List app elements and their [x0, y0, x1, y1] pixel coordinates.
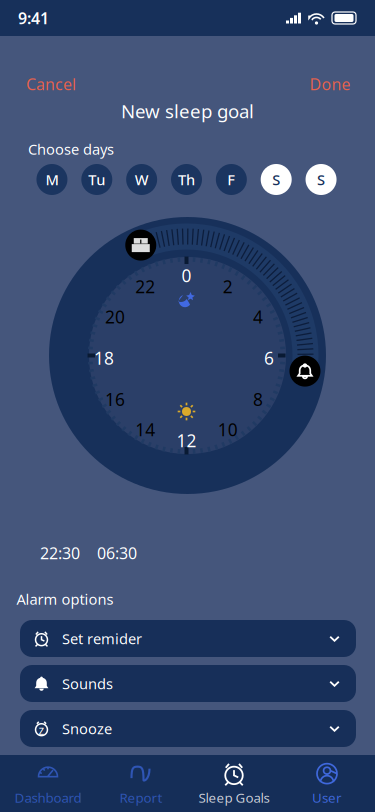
- button[interactable]: Tu: [81, 164, 112, 195]
- button[interactable]: User: [280, 757, 373, 809]
- button[interactable]: F: [216, 164, 247, 195]
- staticText: 12: [176, 429, 196, 452]
- staticText: Th: [178, 170, 195, 189]
- staticText: 06:30: [97, 542, 137, 564]
- staticText: Snooze: [62, 719, 112, 738]
- button[interactable]: Th: [171, 164, 202, 195]
- staticText: Tu: [88, 170, 105, 189]
- staticText: 8: [253, 388, 263, 411]
- button[interactable]: S: [306, 164, 337, 195]
- staticText: S: [272, 170, 280, 189]
- staticText: F: [227, 170, 235, 189]
- staticText: 9:41: [18, 7, 49, 29]
- staticText: Cancel: [26, 73, 76, 95]
- staticText: 6: [264, 346, 274, 369]
- button[interactable]: Dashboard: [1, 757, 94, 809]
- button[interactable]: Sounds: [20, 665, 356, 702]
- staticText: 4: [253, 305, 263, 328]
- staticText: Set remider: [62, 629, 142, 648]
- button[interactable]: W: [126, 164, 157, 195]
- staticText: Dashboard: [14, 789, 81, 806]
- button[interactable]: Done: [299, 64, 360, 104]
- staticText: Alarm options: [16, 589, 113, 609]
- staticText: User: [312, 789, 342, 806]
- button[interactable]: S: [261, 164, 292, 195]
- staticText: 10: [218, 418, 238, 441]
- staticText: S: [317, 170, 325, 189]
- staticText: New sleep goal: [121, 99, 254, 123]
- staticText: 22:30: [40, 542, 80, 564]
- staticText: Report: [119, 789, 162, 806]
- button[interactable]: Sleep Goals: [187, 757, 280, 809]
- button[interactable]: Report: [94, 757, 187, 809]
- button[interactable]: M: [36, 164, 67, 195]
- staticText: 14: [135, 418, 155, 441]
- staticText: 22: [135, 275, 155, 298]
- staticText: M: [45, 170, 58, 189]
- staticText: 0: [181, 264, 191, 287]
- staticText: 16: [105, 388, 125, 411]
- button[interactable]: Set remider: [20, 620, 356, 657]
- staticText: Sounds: [62, 674, 113, 693]
- button[interactable]: Cancel: [16, 64, 86, 104]
- staticText: Done: [309, 73, 350, 95]
- staticText: 20: [105, 305, 125, 328]
- staticText: 18: [94, 346, 114, 369]
- staticText: W: [135, 170, 149, 189]
- staticText: z: [38, 722, 44, 738]
- staticText: Choose days: [28, 139, 114, 159]
- staticText: 2: [223, 275, 233, 298]
- staticText: Sleep Goals: [198, 789, 269, 806]
- button[interactable]: z: [20, 710, 356, 747]
